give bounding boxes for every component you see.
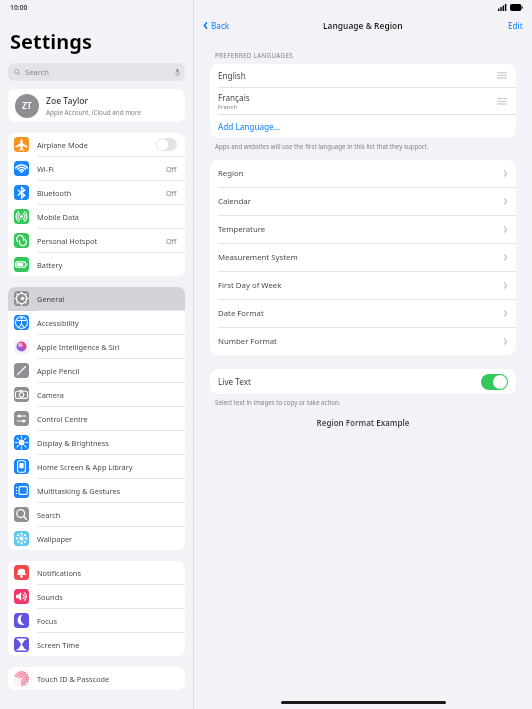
- button[interactable]: Measurement System: [210, 244, 516, 272]
- button[interactable]: Français: [210, 88, 516, 114]
- button[interactable]: Temperature: [210, 216, 516, 244]
- staticText: Number Format: [218, 336, 503, 347]
- staticText: Zoe Taylor: [46, 95, 89, 107]
- staticText: ZT: [22, 100, 32, 112]
- staticText: Français: [218, 92, 250, 103]
- button[interactable]: [156, 138, 177, 151]
- other: Reorder English: [497, 72, 507, 79]
- button[interactable]: Multitasking & Gestures: [8, 479, 185, 503]
- button[interactable]: Add Language...: [210, 115, 516, 138]
- button[interactable]: Accessibility: [8, 311, 185, 335]
- button[interactable]: Apple Intelligence & Siri: [8, 335, 185, 359]
- staticText: Search: [25, 67, 175, 77]
- staticText: Off: [166, 164, 177, 174]
- button[interactable]: Notifications: [8, 561, 185, 585]
- staticText: French: [218, 103, 238, 111]
- button[interactable]: Search: [8, 503, 185, 527]
- staticText: Bluetooth: [37, 188, 166, 198]
- button[interactable]: Sounds: [8, 585, 185, 609]
- staticText: Apple Account, iCloud and more: [46, 108, 141, 117]
- button[interactable]: Focus: [8, 609, 185, 633]
- staticText: Back: [211, 20, 230, 31]
- staticText: Apple Pencil: [37, 366, 177, 376]
- staticText: Personal Hotspot: [37, 236, 166, 246]
- staticText: Region: [218, 168, 503, 179]
- staticText: 10:00: [10, 3, 28, 12]
- staticText: Off: [166, 188, 177, 198]
- button[interactable]: Date Format: [210, 300, 516, 328]
- staticText: Calendar: [218, 196, 503, 207]
- button[interactable]: Wallpaper: [8, 527, 185, 550]
- button[interactable]: Control Centre: [8, 407, 185, 431]
- button[interactable]: Back: [201, 18, 232, 33]
- staticText: Multitasking & Gestures: [37, 486, 177, 496]
- staticText: Add Language...: [218, 121, 281, 132]
- staticText: Off: [166, 236, 177, 246]
- staticText: Accessibility: [37, 318, 177, 328]
- button[interactable]: Number Format: [210, 328, 516, 355]
- staticText: Camera: [37, 390, 177, 400]
- button[interactable]: Edit: [508, 20, 523, 31]
- staticText: Screen Time: [37, 640, 177, 650]
- staticText: Measurement System: [218, 252, 503, 263]
- staticText: Language & Region: [323, 20, 403, 31]
- button[interactable]: Calendar: [210, 188, 516, 216]
- staticText: Temperature: [218, 224, 503, 235]
- button[interactable]: Battery: [8, 253, 185, 276]
- staticText: Focus: [37, 616, 177, 626]
- staticText: Home Screen & App Library: [37, 462, 177, 472]
- button[interactable]: Camera: [8, 383, 185, 407]
- staticText: General: [37, 294, 177, 304]
- staticText: Date Format: [218, 308, 503, 319]
- button[interactable]: Home Screen & App Library: [8, 455, 185, 479]
- button[interactable]: English: [210, 64, 516, 87]
- staticText: Airplane Mode: [37, 140, 156, 150]
- other: Reorder Français: [497, 98, 507, 105]
- staticText: Battery: [37, 260, 177, 270]
- button[interactable]: Airplane Mode: [8, 133, 185, 157]
- button[interactable]: Mobile Data: [8, 205, 185, 229]
- staticText: Control Centre: [37, 414, 177, 424]
- staticText: Settings: [10, 28, 92, 55]
- staticText: Notifications: [37, 568, 177, 578]
- staticText: Live Text: [218, 376, 481, 387]
- button[interactable]: General: [8, 287, 185, 311]
- staticText: Region Format Example: [194, 417, 532, 428]
- button[interactable]: First Day of Week: [210, 272, 516, 300]
- button[interactable]: ZT: [8, 89, 185, 122]
- staticText: Display & Brightness: [37, 438, 177, 448]
- button[interactable]: Screen Time: [8, 633, 185, 656]
- button[interactable]: Personal Hotspot: [8, 229, 185, 253]
- staticText: Apps and websites will use the first lan…: [215, 142, 429, 150]
- staticText: Touch ID & Passcode: [37, 674, 177, 684]
- button[interactable]: Region: [210, 160, 516, 188]
- button[interactable]: Bluetooth: [8, 181, 185, 205]
- staticText: Search: [37, 510, 177, 520]
- button[interactable]: Touch ID & Passcode: [8, 667, 185, 690]
- staticText: First Day of Week: [218, 280, 503, 291]
- staticText: Wallpaper: [37, 534, 177, 544]
- staticText: Wi-Fi: [37, 164, 166, 174]
- button[interactable]: Wi-Fi: [8, 157, 185, 181]
- staticText: Apple Intelligence & Siri: [37, 342, 177, 352]
- staticText: English: [218, 70, 497, 81]
- staticText: Sounds: [37, 592, 177, 602]
- button[interactable]: Search: [8, 63, 185, 81]
- staticText: Select text in images to copy or take ac…: [215, 398, 341, 406]
- button[interactable]: Display & Brightness: [8, 431, 185, 455]
- button[interactable]: Live Text: [210, 369, 516, 394]
- button[interactable]: Apple Pencil: [8, 359, 185, 383]
- staticText: Mobile Data: [37, 212, 177, 222]
- staticText: PREFERRED LANGUAGES: [215, 51, 293, 60]
